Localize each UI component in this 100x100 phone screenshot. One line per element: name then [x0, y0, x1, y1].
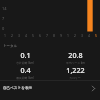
- staticText: 6: [39, 33, 41, 38]
- staticText: カロリー: [69, 76, 81, 80]
- staticText: 1: [67, 33, 69, 38]
- staticText: 3: [81, 33, 83, 38]
- staticText: 2: [74, 33, 76, 38]
- staticText: 1: [4, 33, 6, 38]
- staticText: トータル: [3, 44, 18, 48]
- staticText: 4: [88, 33, 90, 38]
- staticText: 合計距離 (km): [16, 61, 34, 65]
- staticText: 8: [53, 33, 55, 38]
- button[interactable]: 自己ベストを表示: [0, 81, 100, 95]
- staticText: 0.1: [20, 50, 31, 60]
- staticText: 自己ベストを表示: [3, 86, 33, 91]
- staticText: 4: [25, 33, 27, 38]
- staticText: 5: [95, 33, 97, 38]
- staticText: 0: [2, 26, 5, 31]
- other: Open: [90, 85, 97, 92]
- staticText: 最長距離 (km): [16, 76, 34, 80]
- staticText: 5: [32, 33, 34, 38]
- staticText: 7: [46, 33, 48, 38]
- staticText: 平均ペース km: [66, 61, 85, 65]
- staticText: 3: [18, 33, 20, 38]
- staticText: 2: [11, 33, 13, 38]
- staticText: 9: [60, 33, 62, 38]
- staticText: 20.8: [68, 50, 83, 60]
- staticText: 1,222: [66, 65, 85, 75]
- staticText: 7: [2, 16, 5, 21]
- staticText: 14: [2, 6, 7, 11]
- staticText: 0.4: [20, 65, 31, 75]
